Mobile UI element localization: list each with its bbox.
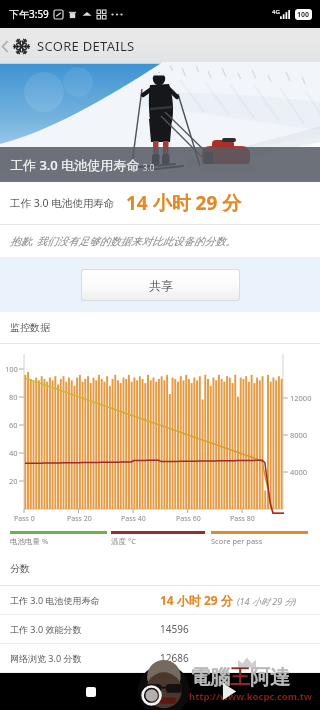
staticText: Pass 0 [14,514,35,524]
staticText: 王 [230,665,250,690]
staticText: 14 小时 29 分 [126,190,242,216]
button[interactable]: 工作 3.0 效能分数 [0,615,320,644]
staticText: 100 [5,364,18,374]
staticText: 分数 [10,562,30,575]
staticText: 4000 [290,467,308,477]
staticText: 下午3:59 [9,7,49,21]
button[interactable]: Home [86,687,96,697]
staticText: 工作 3.0 电池使用寿命 [10,156,140,174]
staticText: 抱歉, 我们没有足够的数据来对比此设备的分数。 [10,234,236,248]
staticText: 60 [9,420,18,430]
button[interactable]: Back [0,28,10,64]
button[interactable]: 工作 3.0 电池使用寿命 [0,586,320,615]
staticText: 3.0 [143,162,155,173]
staticText: 工作 3.0 效能分数 [10,623,82,635]
staticText: 监控数据 [10,321,50,334]
staticText: 80 [9,392,18,402]
staticText: http://www.kocpc.com.tw [189,690,312,703]
staticText: SCORE DETAILS [37,37,135,55]
staticText: (14 小时 29 分) [237,595,297,607]
staticText: 電腦 [190,665,230,690]
staticText: 20 [9,476,18,486]
staticText: 共享 [149,278,173,293]
button[interactable]: 共享 [82,270,239,300]
staticText: 阿達 [250,665,290,690]
staticText: Pass 40 [121,514,146,524]
staticText: 40 [9,448,18,458]
button[interactable]: 网络浏览 3.0 分数 [0,644,320,673]
staticText: 12686 [160,651,189,665]
staticText: 网络浏览 3.0 分数 [10,652,82,664]
staticText: 12000 [290,393,312,403]
staticText: 电池电量 % [10,536,49,546]
staticText: 温度 °C [111,536,136,546]
staticText: Pass 60 [176,514,201,524]
staticText: Pass 80 [230,514,255,524]
staticText: 8000 [290,430,308,440]
staticText: 100 [297,10,310,20]
staticText: 14 小时 29 分 [160,592,233,608]
staticText: Pass 20 [67,514,92,524]
staticText: 4G [272,8,280,16]
staticText: Score per pass [211,536,263,546]
staticText: 工作 3.0 电池使用寿命 [10,196,115,210]
staticText: 工作 3.0 电池使用寿命 [10,594,100,606]
staticText: 14596 [160,622,189,636]
